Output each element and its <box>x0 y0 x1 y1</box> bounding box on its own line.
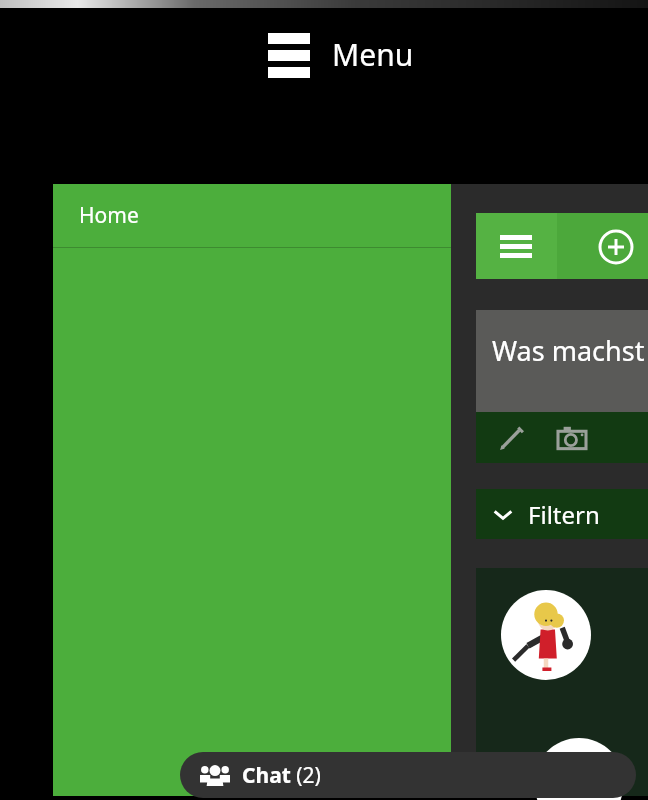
other: Menu <box>500 235 536 259</box>
staticText: Was machst du gerade? <box>492 332 648 369</box>
button[interactable]: Filtern nach <box>476 489 648 539</box>
button[interactable]: Was machst du gerade? <box>476 310 648 412</box>
button[interactable]: Chat (2) <box>180 752 636 798</box>
other: Add <box>598 229 634 265</box>
button[interactable]: Camera <box>548 414 596 462</box>
staticText: Chat (2) <box>242 761 321 790</box>
staticText: Filtern nach <box>528 498 648 531</box>
staticText: Home <box>79 201 139 230</box>
button[interactable]: Home <box>53 184 451 247</box>
button[interactable]: Menu <box>266 28 416 80</box>
staticText: Menu <box>332 34 414 75</box>
button[interactable]: Menu <box>476 213 648 279</box>
button[interactable] <box>476 568 648 796</box>
button[interactable]: Edit <box>488 414 536 462</box>
